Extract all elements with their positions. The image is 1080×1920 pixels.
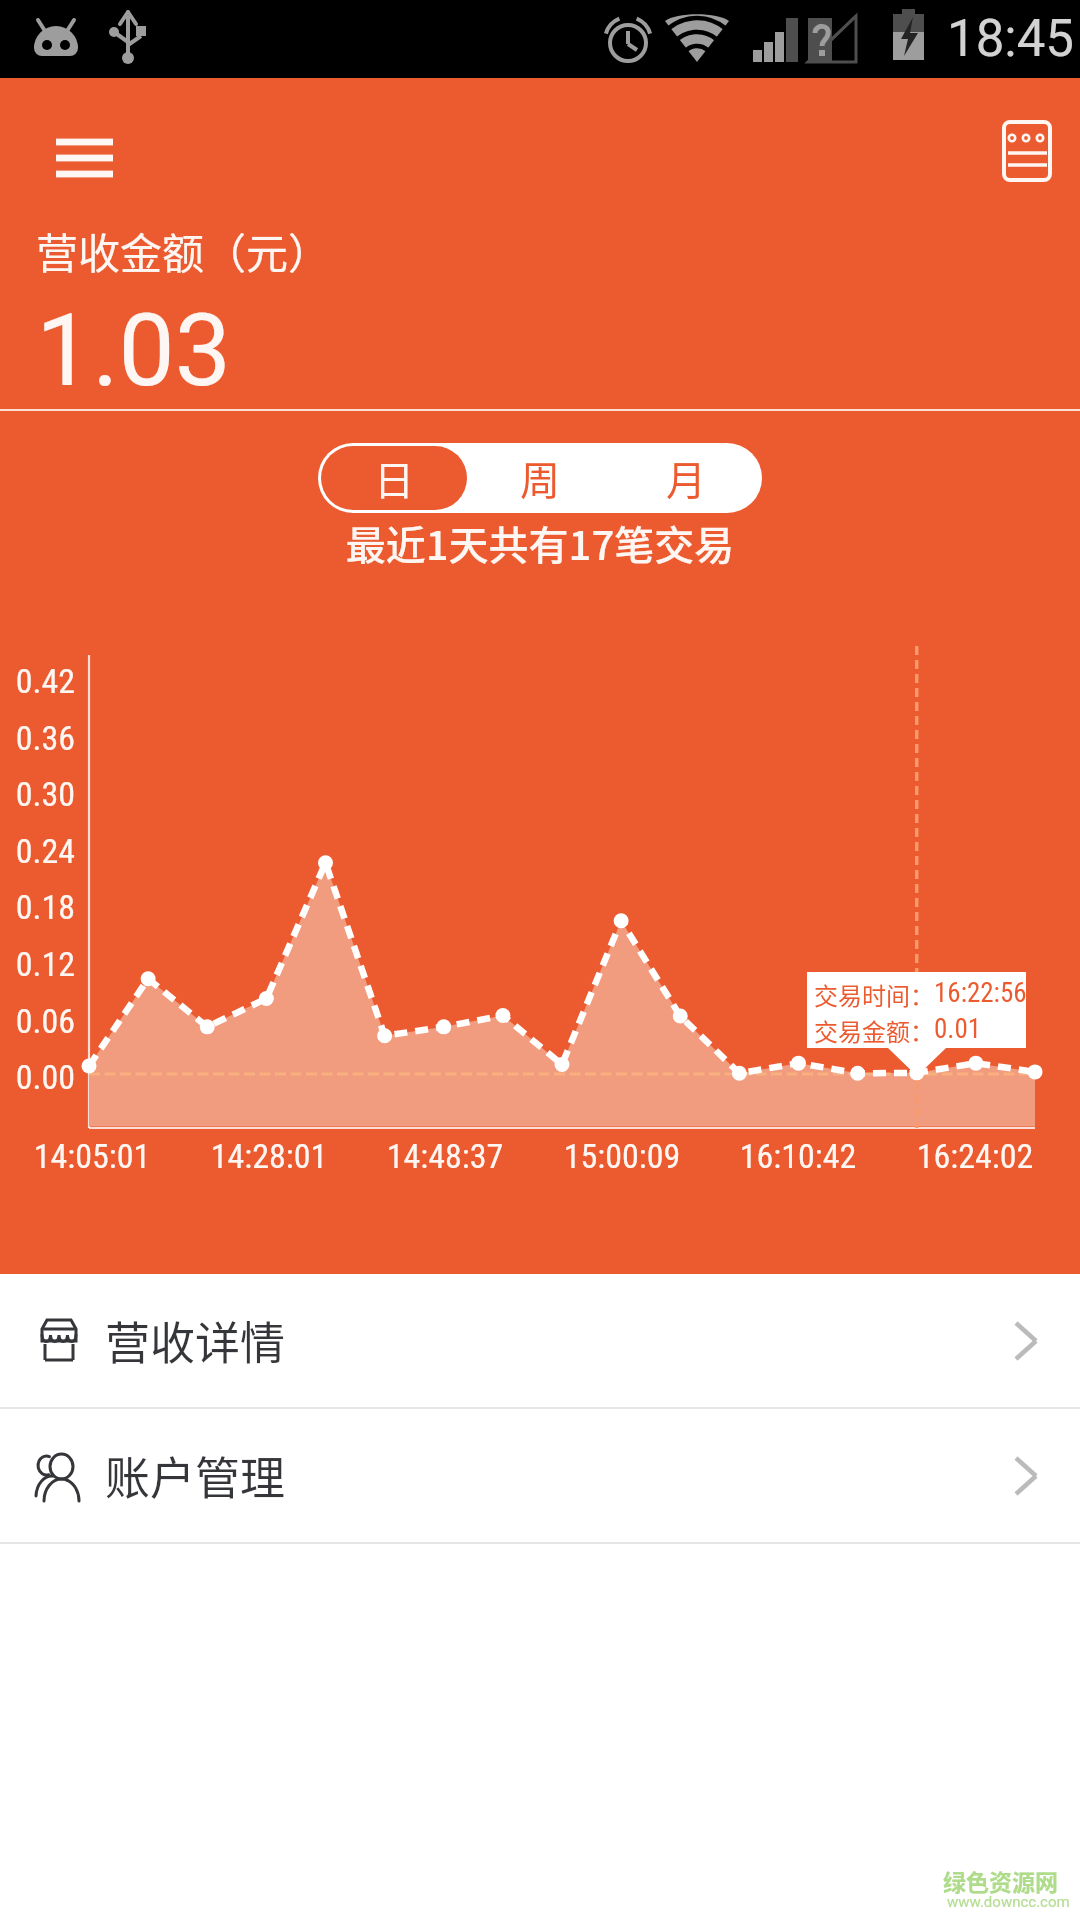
staticText: 14:05:01 bbox=[2, 1136, 182, 1176]
staticText: 0.00 bbox=[0, 1057, 75, 1097]
staticText: 0.12 bbox=[0, 944, 75, 984]
staticText: 日 bbox=[374, 449, 414, 507]
staticText: 18:45 bbox=[947, 9, 1075, 69]
staticText: 0.24 bbox=[0, 831, 75, 871]
staticText: 周 bbox=[520, 449, 560, 507]
staticText: 0.06 bbox=[0, 1001, 75, 1041]
staticText: 交易时间： bbox=[814, 977, 934, 1012]
staticText: 绿色资源网 bbox=[943, 1864, 1058, 1897]
staticText: 14:48:37 bbox=[355, 1136, 535, 1176]
staticText: 0.30 bbox=[0, 774, 75, 814]
staticText: 月 bbox=[666, 449, 706, 507]
staticText: 16:24:02 bbox=[885, 1136, 1065, 1176]
button[interactable]: Open navigation menu bbox=[34, 110, 134, 202]
staticText: 交易金额： bbox=[814, 1013, 934, 1048]
staticText: 0.18 bbox=[0, 887, 75, 927]
staticText: 16:10:42 bbox=[708, 1136, 888, 1176]
button[interactable]: Transaction records bbox=[972, 94, 1072, 198]
button[interactable]: 周 bbox=[467, 446, 613, 510]
staticText: 最近1天共有17笔交易 bbox=[0, 514, 1080, 572]
staticText: 0.36 bbox=[0, 718, 75, 758]
staticText: 14:28:01 bbox=[179, 1136, 359, 1176]
staticText: www.downcc.com bbox=[947, 1893, 1070, 1911]
button[interactable]: 日 bbox=[321, 446, 467, 510]
staticText: 0.01 bbox=[934, 1013, 982, 1045]
staticText: 16:22:56 bbox=[934, 977, 1027, 1009]
staticText: 15:00:09 bbox=[532, 1136, 712, 1176]
staticText: 营收金额（元） bbox=[36, 220, 331, 281]
button[interactable]: 月 bbox=[613, 446, 759, 510]
staticText: 0.42 bbox=[0, 661, 75, 701]
staticText: 营收详情 bbox=[105, 1308, 286, 1373]
staticText: 1.03 bbox=[36, 292, 231, 409]
button[interactable]: 营收详情 bbox=[0, 1274, 1080, 1407]
staticText: 账户管理 bbox=[105, 1443, 286, 1508]
button[interactable]: 账户管理 bbox=[0, 1409, 1080, 1542]
